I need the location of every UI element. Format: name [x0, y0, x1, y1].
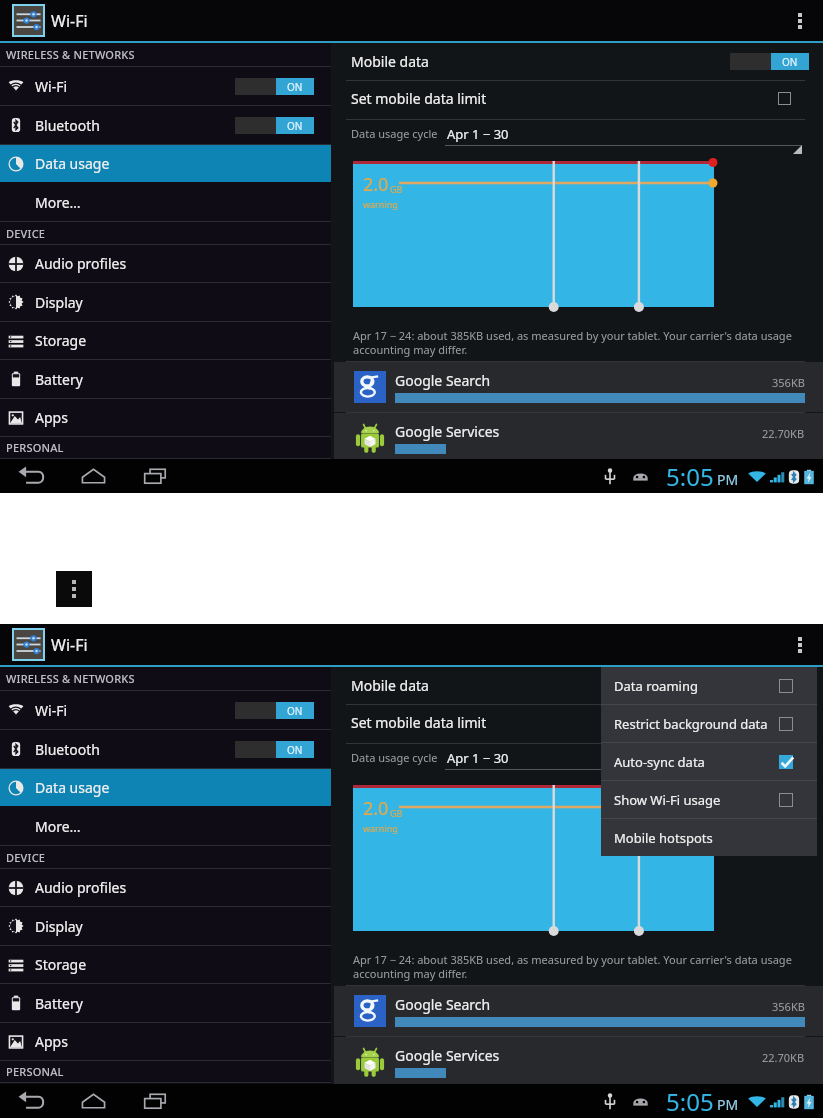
button[interactable]: Storage: [0, 946, 331, 983]
button[interactable]: Back: [5, 1084, 57, 1118]
staticText: Google Services: [395, 1046, 500, 1065]
staticText: Apr 17 − 24: about 385KB used, as measur…: [353, 328, 801, 357]
staticText: Wi-Fi: [35, 701, 68, 720]
staticText: More…: [35, 193, 81, 212]
button[interactable]: Bluetooth: [0, 106, 331, 144]
button[interactable]: Data usage cycle: [351, 744, 823, 771]
staticText: Mobile data: [351, 676, 429, 695]
staticText: Battery: [35, 370, 83, 389]
staticText: Restrict background data: [614, 715, 768, 733]
button[interactable]: Mobile hotspots: [614, 819, 793, 856]
button[interactable]: More…: [0, 807, 331, 845]
button[interactable]: Back: [5, 459, 57, 493]
staticText: Auto-sync data: [614, 753, 705, 771]
button[interactable]: Battery: [0, 984, 331, 1022]
button[interactable]: Display: [0, 907, 331, 945]
button[interactable]: Mobile data: [351, 43, 809, 80]
button[interactable]: Auto-sync data: [614, 743, 793, 780]
button[interactable]: Google Services: [353, 1037, 805, 1087]
button[interactable]: Audio profiles: [0, 869, 331, 906]
staticText: Audio profiles: [35, 254, 127, 273]
button[interactable]: Data usage: [0, 145, 331, 182]
button[interactable]: Recents: [129, 1084, 181, 1118]
staticText: Data usage cycle: [351, 126, 438, 141]
button[interactable]: Bluetooth: [0, 730, 331, 768]
staticText: ON: [287, 704, 303, 718]
staticText: GB: [390, 183, 403, 195]
staticText: Google Services: [395, 422, 500, 441]
staticText: Wi-Fi: [35, 77, 68, 96]
button[interactable]: Google Search: [353, 362, 805, 412]
staticText: Apps: [35, 408, 68, 427]
staticText: Google Search: [395, 995, 491, 1014]
button[interactable]: Battery: [0, 360, 331, 398]
button[interactable]: More…: [0, 183, 331, 221]
button[interactable]: More options: [56, 571, 92, 607]
button[interactable]: Home: [67, 1084, 119, 1118]
button[interactable]: Recents: [129, 459, 181, 493]
staticText: ON: [782, 55, 798, 69]
staticText: Bluetooth: [35, 116, 100, 135]
staticText: ON: [287, 80, 303, 94]
staticText: Wi-Fi: [51, 634, 88, 656]
button[interactable]: Data roaming: [614, 667, 793, 704]
button[interactable]: Wi-Fi: [0, 67, 331, 105]
staticText: Apps: [35, 1032, 68, 1051]
staticText: 2.0: [363, 172, 389, 197]
staticText: Set mobile data limit: [351, 89, 487, 108]
button[interactable]: Mobile data: [351, 667, 809, 704]
staticText: Data roaming: [614, 677, 698, 695]
staticText: WIRELESS & NETWORKS: [6, 671, 135, 686]
staticText: DEVICE: [6, 850, 46, 865]
button[interactable]: More options: [777, 0, 823, 41]
staticText: ON: [782, 679, 798, 693]
button[interactable]: More options: [777, 624, 823, 665]
staticText: Google Search: [395, 371, 491, 390]
staticText: 5:05: [666, 460, 714, 493]
button[interactable]: Google Search: [353, 986, 805, 1036]
staticText: ON: [287, 119, 303, 133]
staticText: warning: [363, 198, 398, 210]
staticText: Storage: [35, 955, 87, 974]
button[interactable]: Set mobile data limit: [351, 703, 791, 741]
button[interactable]: Apps: [0, 1023, 331, 1060]
staticText: Mobile hotspots: [614, 829, 713, 847]
staticText: Apr 1 − 30: [447, 125, 509, 143]
staticText: Data usage cycle: [351, 750, 438, 765]
staticText: Battery: [35, 994, 83, 1013]
staticText: PM: [717, 1095, 739, 1114]
staticText: WIRELESS & NETWORKS: [6, 47, 135, 62]
button[interactable]: Restrict background data: [614, 705, 793, 742]
staticText: Display: [35, 917, 83, 936]
button[interactable]: Google Services: [353, 413, 805, 463]
staticText: Apr 17 − 24: about 385KB used, as measur…: [353, 952, 801, 981]
staticText: Data usage: [35, 154, 110, 173]
staticText: ON: [287, 743, 303, 757]
staticText: Show Wi-Fi usage: [614, 791, 721, 809]
staticText: DEVICE: [6, 226, 46, 241]
button[interactable]: Wi-Fi: [0, 691, 331, 729]
staticText: Apr 1 − 30: [447, 749, 509, 767]
button[interactable]: Apps: [0, 399, 331, 436]
staticText: Set mobile data limit: [351, 713, 487, 732]
staticText: GB: [390, 807, 403, 819]
button[interactable]: Storage: [0, 322, 331, 359]
button[interactable]: Home: [67, 459, 119, 493]
button[interactable]: Data usage cycle: [351, 120, 823, 147]
staticText: 356KB: [772, 375, 805, 390]
staticText: 356KB: [772, 999, 805, 1014]
staticText: 22.70KB: [762, 426, 805, 441]
staticText: Storage: [35, 331, 87, 350]
button[interactable]: Show Wi-Fi usage: [614, 781, 793, 818]
staticText: 2.0: [363, 796, 389, 821]
staticText: Mobile data: [351, 52, 429, 71]
button[interactable]: Audio profiles: [0, 245, 331, 282]
staticText: PERSONAL: [6, 1064, 64, 1079]
button[interactable]: Data usage: [0, 769, 331, 806]
staticText: More…: [35, 817, 81, 836]
staticText: PM: [717, 470, 739, 489]
staticText: PERSONAL: [6, 440, 64, 455]
button[interactable]: Set mobile data limit: [351, 79, 791, 117]
staticText: Display: [35, 293, 83, 312]
button[interactable]: Display: [0, 283, 331, 321]
